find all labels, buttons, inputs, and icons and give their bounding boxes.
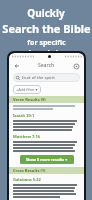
button[interactable]: Cross Results (1)	[9, 167, 84, 174]
staticText: Matthew 7:16	[13, 134, 40, 139]
button[interactable]: Matthew 7:16	[13, 134, 40, 139]
button[interactable]: +Add filter ▾	[13, 85, 41, 94]
button[interactable]: Galatians 5:22	[13, 177, 41, 182]
button[interactable]: Isaiah 30:1	[13, 113, 35, 118]
staticText: for specific	[27, 38, 66, 48]
button[interactable]: Show 6 more results ▾	[20, 155, 74, 164]
staticText: Quickly	[27, 6, 65, 20]
staticText: words and phrases	[13, 48, 79, 58]
button[interactable]: Back	[13, 62, 21, 70]
staticText: +Add filter ▾	[16, 87, 38, 92]
staticText: Cross Results (1)	[13, 168, 46, 173]
button[interactable]: fruit of the spirit	[13, 73, 80, 82]
staticText: Search	[38, 62, 55, 69]
staticText: Galatians 5:22	[13, 177, 41, 182]
staticText: Isaiah 30:1	[13, 113, 35, 118]
button[interactable]: Verse Results (9)	[9, 96, 84, 103]
staticText: fruit of the spirit	[22, 75, 55, 81]
button[interactable]: Settings	[72, 62, 80, 70]
staticText: Verse Results (9)	[13, 97, 46, 102]
staticText: Search the Bible	[2, 21, 91, 36]
staticText: Show 6 more results ▾	[26, 157, 68, 162]
